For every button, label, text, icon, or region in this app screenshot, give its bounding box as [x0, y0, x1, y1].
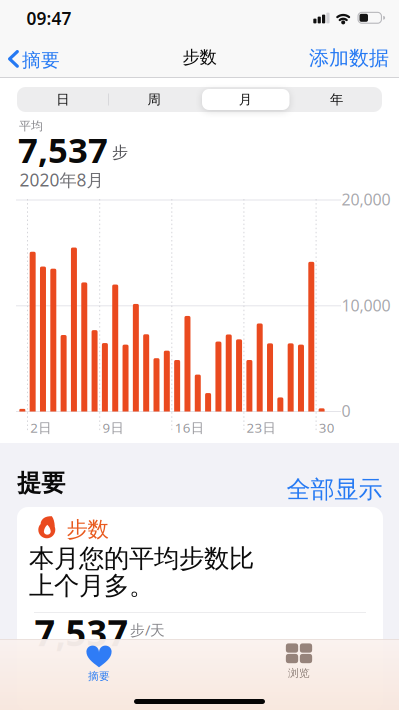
staticText: 步 [112, 142, 128, 162]
button[interactable]: 添加数据 [0, 46, 389, 70]
button[interactable]: 周 [108, 87, 199, 112]
staticText: 添加数据 [309, 46, 389, 70]
staticText: 摘要 [22, 49, 60, 72]
staticText: 全部显示 [286, 475, 382, 504]
staticText: 提要 [17, 468, 65, 498]
staticText: 浏览 [288, 667, 310, 680]
staticText: 周 [147, 91, 160, 108]
staticText: 23日 [247, 419, 276, 436]
staticText: 日 [56, 91, 69, 108]
staticText: 09:47 [26, 7, 71, 30]
staticText: 步数 [182, 47, 216, 68]
staticText: 2020年8月 [19, 168, 103, 191]
staticText: 步数 [66, 516, 108, 543]
button[interactable]: 全部显示 [0, 475, 382, 504]
button[interactable]: 日 [17, 87, 108, 112]
button[interactable]: 摘要 [0, 0, 68, 77]
staticText: 0 [341, 400, 350, 421]
button[interactable]: 年 [291, 87, 382, 112]
staticText: 9日 [102, 419, 123, 436]
staticText: 月 [239, 91, 252, 108]
staticText: 步/天 [130, 620, 165, 640]
staticText: 摘要 [88, 670, 110, 683]
button[interactable]: 月 [199, 87, 291, 112]
button[interactable]: 浏览 [254, 641, 344, 681]
staticText: 10,000 [341, 295, 390, 316]
staticText: 7,537 [18, 127, 108, 173]
button[interactable]: 摘要 [54, 644, 144, 684]
staticText: 本月您的平均步数比 [29, 543, 254, 574]
staticText: 平均 [19, 119, 43, 133]
button[interactable]: 步数 [17, 507, 383, 710]
staticText: 2日 [30, 419, 51, 436]
staticText: 上个月多。 [29, 570, 154, 601]
staticText: 年 [330, 91, 343, 108]
staticText: 7,537 [34, 608, 128, 656]
staticText: 30 [319, 419, 335, 436]
staticText: 20,000 [341, 189, 390, 210]
staticText: 16日 [175, 419, 204, 436]
